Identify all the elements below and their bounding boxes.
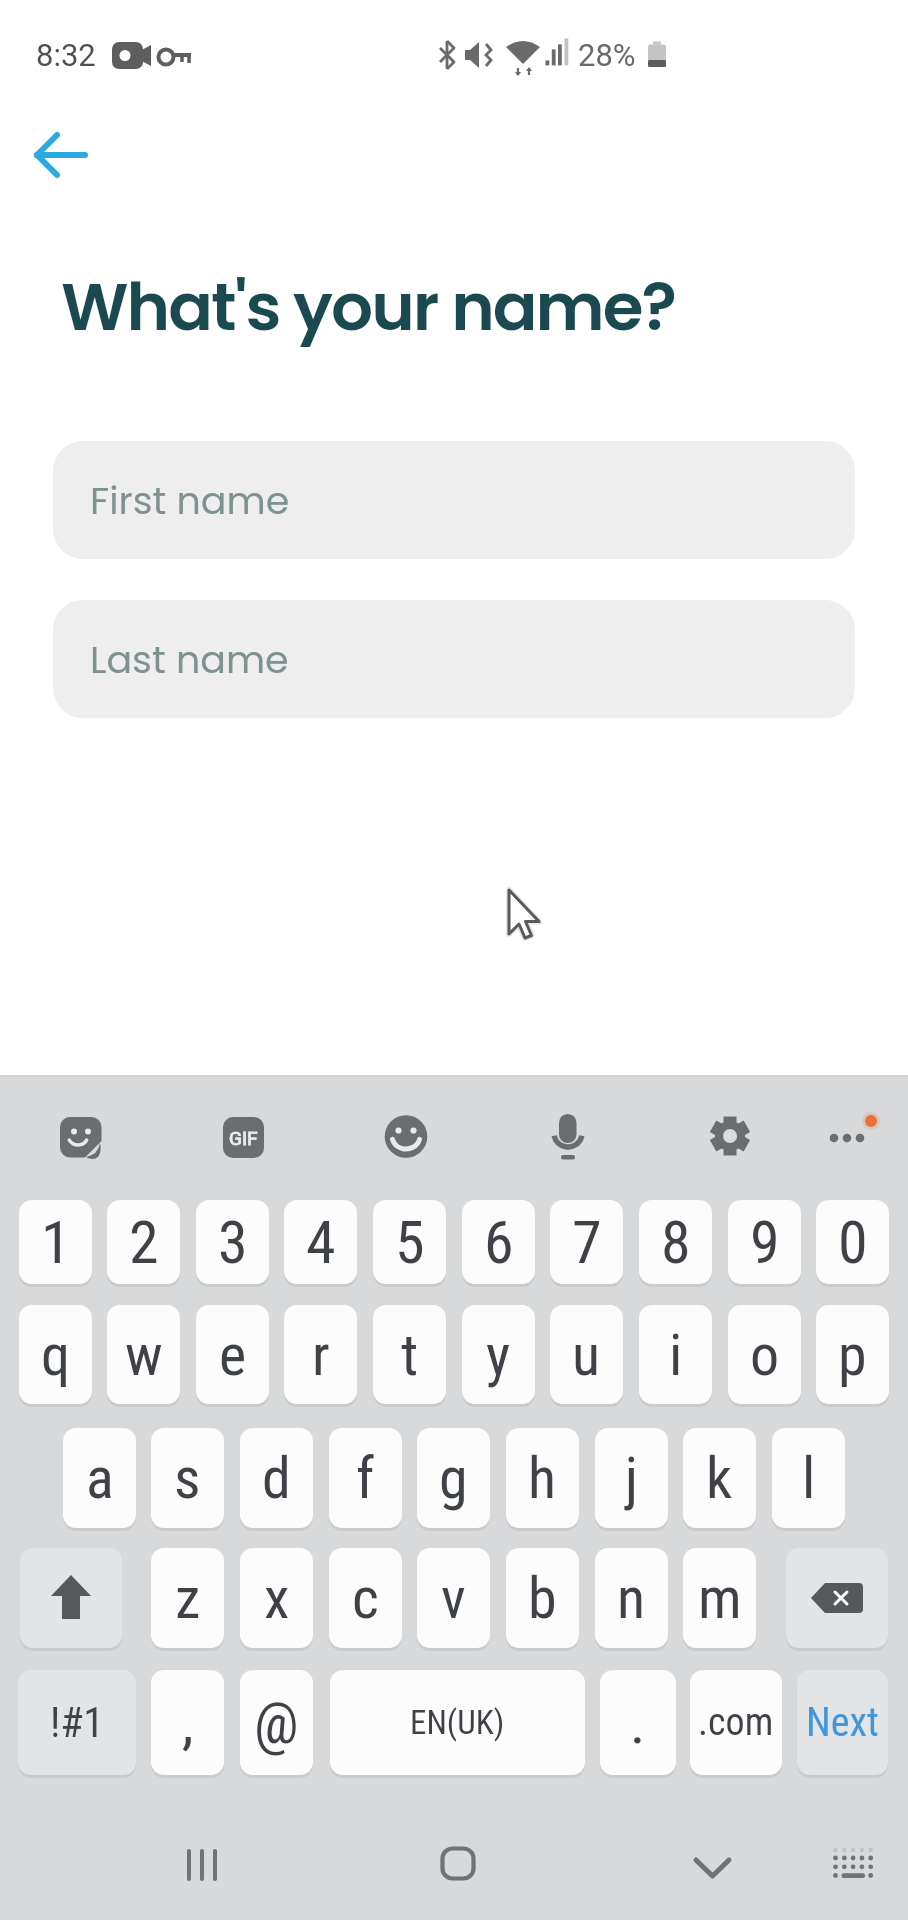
staticText: .com <box>698 1700 774 1745</box>
button[interactable]: 7 <box>550 1200 623 1284</box>
staticText: 5 <box>395 1207 425 1277</box>
button[interactable]: a <box>63 1428 136 1528</box>
staticText: a <box>86 1444 114 1512</box>
staticText: v <box>441 1564 466 1632</box>
button[interactable]: @ <box>240 1670 313 1775</box>
button[interactable] <box>709 1115 751 1157</box>
button[interactable]: w <box>107 1305 180 1404</box>
button[interactable]: x <box>240 1548 313 1648</box>
button[interactable]: . <box>600 1670 676 1775</box>
button[interactable]: m <box>683 1548 756 1648</box>
staticText: 8 <box>661 1207 691 1277</box>
button[interactable] <box>440 1846 478 1884</box>
button[interactable]: t <box>373 1305 446 1404</box>
staticText: 6 <box>484 1207 514 1277</box>
button[interactable]: 3 <box>196 1200 269 1284</box>
staticText: , <box>182 1689 194 1757</box>
staticText: 1 <box>41 1207 71 1277</box>
staticText: d <box>262 1444 291 1512</box>
staticText: x <box>264 1564 290 1632</box>
button[interactable]: s <box>151 1428 224 1528</box>
staticText: e <box>219 1321 247 1389</box>
button[interactable]: EN(UK) <box>330 1670 585 1775</box>
button[interactable]: Next <box>797 1670 888 1775</box>
staticText: 28% <box>578 37 636 73</box>
button[interactable] <box>690 1848 734 1886</box>
staticText: t <box>401 1321 419 1389</box>
staticText: o <box>750 1321 780 1389</box>
staticText: b <box>528 1564 557 1632</box>
staticText: Next <box>806 1699 879 1746</box>
staticText: l <box>802 1444 816 1512</box>
button[interactable]: i <box>639 1305 712 1404</box>
button[interactable]: 1 <box>19 1200 92 1284</box>
button[interactable]: e <box>196 1305 269 1404</box>
button[interactable]: v <box>417 1548 490 1648</box>
button[interactable]: GIF <box>223 1117 264 1158</box>
button[interactable]: 9 <box>728 1200 801 1284</box>
staticText: z <box>175 1564 201 1632</box>
button[interactable] <box>24 140 100 196</box>
button[interactable] <box>183 1844 223 1886</box>
button[interactable]: 2 <box>107 1200 180 1284</box>
button[interactable] <box>828 1842 878 1884</box>
button[interactable]: r <box>284 1305 357 1404</box>
button[interactable] <box>549 1112 587 1164</box>
button[interactable] <box>60 1117 102 1158</box>
button[interactable]: , <box>151 1670 224 1775</box>
staticText: 0 <box>838 1207 868 1277</box>
staticText: p <box>838 1321 867 1389</box>
button[interactable]: o <box>728 1305 801 1404</box>
button[interactable]: h <box>506 1428 579 1528</box>
staticText: y <box>486 1321 511 1389</box>
button[interactable]: p <box>816 1305 889 1404</box>
button[interactable]: 8 <box>639 1200 712 1284</box>
button[interactable]: q <box>19 1305 92 1404</box>
button[interactable]: 4 <box>284 1200 357 1284</box>
staticText: . <box>630 1689 646 1757</box>
staticText: f <box>356 1444 375 1512</box>
staticText: First name <box>90 474 290 527</box>
button[interactable]: g <box>417 1428 490 1528</box>
button[interactable] <box>20 1548 122 1648</box>
button[interactable] <box>820 1105 884 1161</box>
staticText: !#1 <box>50 1698 105 1747</box>
staticText: m <box>698 1564 742 1632</box>
button[interactable]: 0 <box>816 1200 889 1284</box>
button[interactable]: 6 <box>462 1200 535 1284</box>
staticText: h <box>528 1444 557 1512</box>
staticText: GIF <box>229 1127 258 1149</box>
button[interactable]: .com <box>690 1670 782 1775</box>
button[interactable] <box>384 1115 428 1159</box>
staticText: n <box>617 1564 646 1632</box>
staticText: w <box>125 1321 163 1389</box>
button[interactable]: f <box>329 1428 402 1528</box>
button[interactable]: j <box>595 1428 668 1528</box>
button[interactable]: l <box>772 1428 845 1528</box>
staticText: 3 <box>218 1207 248 1277</box>
button[interactable]: d <box>240 1428 313 1528</box>
button[interactable]: First name <box>53 441 855 559</box>
button[interactable]: 5 <box>373 1200 446 1284</box>
staticText: u <box>572 1321 601 1389</box>
staticText: 7 <box>572 1207 602 1277</box>
button[interactable]: y <box>462 1305 535 1404</box>
button[interactable]: u <box>550 1305 623 1404</box>
staticText: i <box>669 1321 683 1389</box>
staticText: EN(UK) <box>410 1703 505 1742</box>
button[interactable]: b <box>506 1548 579 1648</box>
staticText: Last name <box>90 633 289 686</box>
button[interactable]: Last name <box>53 600 855 718</box>
staticText: k <box>706 1444 733 1512</box>
button[interactable]: c <box>329 1548 402 1648</box>
button[interactable] <box>786 1548 888 1648</box>
button[interactable]: !#1 <box>18 1670 136 1775</box>
staticText: 4 <box>306 1207 336 1277</box>
button[interactable]: k <box>683 1428 756 1528</box>
staticText: s <box>174 1444 201 1512</box>
button[interactable]: n <box>595 1548 668 1648</box>
staticText: q <box>41 1321 71 1389</box>
staticText: 9 <box>750 1207 780 1277</box>
staticText: r <box>312 1321 330 1389</box>
button[interactable]: z <box>151 1548 224 1648</box>
